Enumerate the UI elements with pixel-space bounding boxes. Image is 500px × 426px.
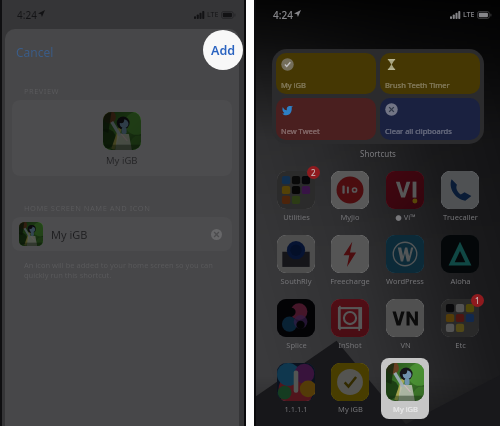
button[interactable]: 2: [277, 171, 315, 222]
staticText: Truecaller: [443, 212, 478, 222]
staticText: 4:24: [273, 8, 293, 22]
button[interactable]: My iGB: [386, 363, 424, 414]
staticText: Splice: [286, 340, 307, 350]
staticText: PREVIEW: [24, 86, 60, 96]
staticText: My iGB: [106, 154, 138, 167]
staticText: VN: [400, 340, 411, 350]
staticText: WordPress: [386, 276, 424, 286]
staticText: LTE: [463, 10, 475, 20]
button[interactable]: Add: [203, 30, 243, 70]
staticText: New Tweet: [281, 126, 320, 136]
staticText: 2: [311, 167, 316, 178]
button[interactable]: ● Vi™: [386, 171, 424, 222]
staticText: Add: [211, 42, 236, 59]
staticText: SouthRly: [280, 276, 312, 286]
button[interactable]: 1: [441, 299, 479, 350]
button[interactable]: WordPress: [386, 235, 424, 286]
button[interactable]: InShot: [331, 299, 369, 350]
staticText: Utilities: [283, 212, 310, 222]
other: Clear text: [211, 229, 222, 240]
staticText: An icon will be added to your home scree…: [24, 260, 213, 280]
staticText: ● Vi™: [395, 212, 416, 222]
button[interactable]: 1.1.1.1: [277, 363, 315, 414]
staticText: Etc: [455, 340, 466, 350]
staticText: My iGB: [338, 404, 363, 414]
button[interactable]: SouthRly: [277, 235, 315, 286]
button[interactable]: Clear all clipboards: [380, 98, 480, 140]
staticText: Shortcuts: [256, 148, 500, 159]
button[interactable]: Cancel: [13, 41, 57, 63]
staticText: Aloha: [450, 276, 471, 286]
staticText: LTE: [207, 10, 219, 20]
button[interactable]: Truecaller: [441, 171, 479, 222]
button[interactable]: VN: [386, 299, 424, 350]
staticText: Cancel: [16, 44, 54, 60]
staticText: Freecharge: [330, 276, 370, 286]
staticText: My iGB: [51, 227, 88, 242]
button[interactable]: New Tweet: [276, 98, 376, 140]
staticText: 1.1.1.1: [284, 404, 308, 414]
button[interactable]: Brush Teeth Timer: [380, 53, 480, 94]
staticText: My iGB: [281, 80, 306, 90]
button[interactable]: Aloha: [441, 235, 479, 286]
button[interactable]: My iGB: [12, 217, 232, 251]
staticText: MyJio: [340, 212, 360, 222]
button[interactable]: My iGB: [276, 53, 376, 94]
staticText: HOME SCREEN NAME AND ICON: [24, 203, 151, 213]
staticText: Brush Teeth Timer: [385, 80, 450, 90]
button[interactable]: Splice: [277, 299, 315, 350]
staticText: InShot: [338, 340, 362, 350]
button[interactable]: My iGB: [331, 363, 369, 414]
button[interactable]: MyJio: [331, 171, 369, 222]
staticText: Clear all clipboards: [385, 126, 452, 136]
staticText: 1: [475, 295, 480, 306]
staticText: My iGB: [393, 404, 418, 414]
button[interactable]: Freecharge: [330, 235, 370, 286]
staticText: 4:24: [17, 8, 37, 22]
